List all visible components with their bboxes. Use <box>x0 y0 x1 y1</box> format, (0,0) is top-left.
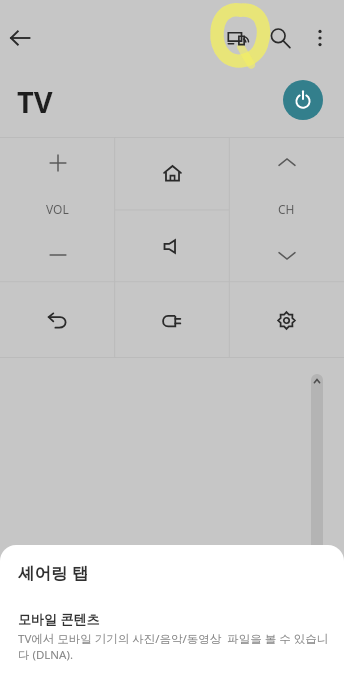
button[interactable]: Search <box>262 20 298 56</box>
button[interactable]: 모바일 콘텐츠 <box>0 610 344 662</box>
staticText: TV <box>17 82 53 121</box>
button[interactable]: Channel up <box>229 137 344 189</box>
button[interactable]: Channel down <box>229 229 344 281</box>
staticText: 모바일 콘텐츠 <box>18 610 100 628</box>
button[interactable]: Volume up <box>0 137 115 189</box>
button[interactable]: Back <box>0 282 114 358</box>
button[interactable]: Screen share <box>220 20 256 56</box>
button[interactable]: Power <box>283 80 323 120</box>
button[interactable]: Mute <box>115 210 230 282</box>
button[interactable]: Settings <box>229 282 344 358</box>
button[interactable]: Volume down <box>0 229 115 281</box>
button[interactable]: More options <box>302 20 338 56</box>
button[interactable]: Input source <box>114 282 229 358</box>
staticText: 셰어링 탭 <box>18 561 89 584</box>
button[interactable]: Home <box>115 137 230 210</box>
staticText: VOL <box>46 201 69 217</box>
staticText: CH <box>278 201 295 217</box>
button[interactable]: Back <box>2 20 38 56</box>
staticText: TV에서 모바일 기기의 사진/음악/동영상 파일을 볼 수 있습니다 (DLN… <box>18 631 330 662</box>
